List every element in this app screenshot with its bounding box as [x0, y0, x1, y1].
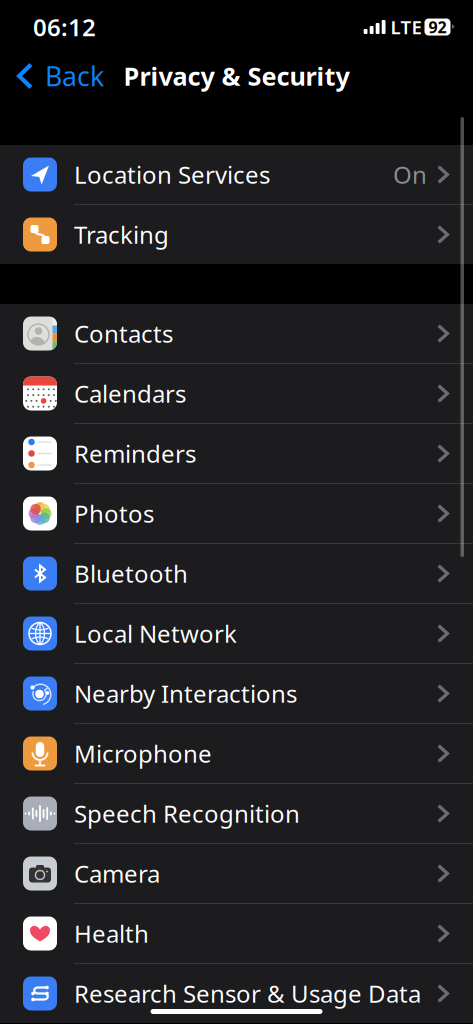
- button[interactable]: Speech Recognition: [0, 784, 473, 843]
- staticText: Microphone: [74, 738, 212, 769]
- button[interactable]: Reminders: [0, 424, 473, 483]
- staticText: Health: [74, 918, 149, 949]
- staticText: Nearby Interactions: [74, 678, 297, 709]
- staticText: Camera: [74, 858, 160, 889]
- staticText: Speech Recognition: [74, 798, 300, 829]
- staticText: Reminders: [74, 438, 196, 469]
- button[interactable]: Health: [0, 904, 473, 963]
- button[interactable]: Location Services: [0, 145, 473, 204]
- button[interactable]: Research Sensor & Usage Data: [0, 964, 473, 1023]
- staticText: 06:12: [33, 11, 96, 43]
- button[interactable]: Calendars: [0, 364, 473, 423]
- staticText: Tracking: [74, 219, 169, 250]
- staticText: Location Services: [74, 159, 270, 190]
- button[interactable]: Back: [0, 54, 112, 98]
- staticText: Photos: [74, 498, 154, 529]
- button[interactable]: Tracking: [0, 205, 473, 264]
- button[interactable]: Nearby Interactions: [0, 664, 473, 723]
- button[interactable]: Local Network: [0, 604, 473, 663]
- button[interactable]: Microphone: [0, 724, 473, 783]
- button[interactable]: Contacts: [0, 304, 473, 363]
- staticText: Calendars: [74, 378, 186, 409]
- staticText: Research Sensor & Usage Data: [74, 978, 421, 1009]
- staticText: 92: [428, 16, 446, 38]
- staticText: Back: [45, 58, 104, 94]
- staticText: Privacy & Security: [123, 59, 349, 93]
- staticText: On: [393, 159, 427, 190]
- staticText: LTE: [390, 15, 421, 39]
- staticText: Bluetooth: [74, 558, 188, 589]
- button[interactable]: Bluetooth: [0, 544, 473, 603]
- button[interactable]: Photos: [0, 484, 473, 543]
- button[interactable]: Camera: [0, 844, 473, 903]
- staticText: Local Network: [74, 618, 237, 649]
- staticText: Contacts: [74, 318, 173, 349]
